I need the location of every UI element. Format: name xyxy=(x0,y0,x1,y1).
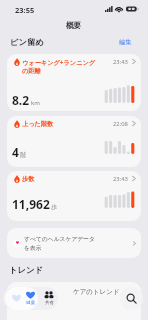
staticText: すべてのヘルスケアデータ を表示 xyxy=(24,235,133,251)
button[interactable]: 編集 xyxy=(117,36,134,48)
button[interactable]: ケアのトレンド xyxy=(7,282,141,320)
staticText: 健康 xyxy=(26,300,35,306)
staticText: ピン留め xyxy=(10,37,44,47)
staticText: 22:08 xyxy=(113,120,128,128)
staticText: 8.2 xyxy=(12,92,30,108)
button[interactable]: ウォーキング+ランニング の距離 xyxy=(7,54,141,111)
staticText: 概要 xyxy=(66,21,82,31)
staticText: 共有 xyxy=(45,300,54,306)
staticText: km xyxy=(31,99,40,107)
staticText: 4 xyxy=(12,144,19,160)
button[interactable]: すべてのヘルスケアデータ を表示 xyxy=(7,228,141,258)
staticText: 編集 xyxy=(119,38,132,46)
button[interactable]: 検索 xyxy=(120,287,143,310)
staticText: ウォーキング+ランニング の距離 xyxy=(22,58,96,75)
button[interactable]: 歩数 xyxy=(7,171,141,221)
button[interactable]: 共有 xyxy=(40,287,58,310)
staticText: 階 xyxy=(20,151,26,159)
staticText: 上った階数 xyxy=(22,120,54,128)
staticText: ケアのトレンド xyxy=(73,288,120,296)
staticText: 歩 xyxy=(51,203,57,211)
button[interactable]: 健康 xyxy=(21,287,39,310)
staticText: 23:43 xyxy=(113,175,128,183)
button[interactable] xyxy=(5,287,38,310)
staticText: トレンド xyxy=(9,265,43,275)
staticText: 23:43 xyxy=(113,58,128,66)
staticText: 歩数 xyxy=(22,175,35,183)
button[interactable]: 上った階数 xyxy=(7,116,141,167)
staticText: 23:55 xyxy=(15,5,35,15)
staticText: 11,962 xyxy=(12,196,50,212)
